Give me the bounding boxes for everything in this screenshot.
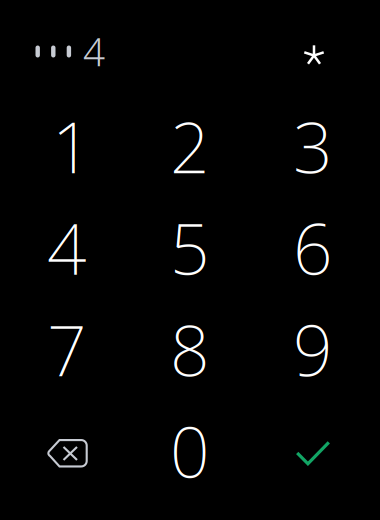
button[interactable]: 8 xyxy=(128,298,251,400)
button[interactable]: 4 xyxy=(5,197,128,298)
staticText: 3 xyxy=(293,100,333,192)
button[interactable]: 6 xyxy=(251,197,374,298)
staticText: 4 xyxy=(83,25,105,77)
staticText: 0 xyxy=(170,405,210,497)
staticText: 6 xyxy=(293,202,333,294)
staticText: 1 xyxy=(52,100,92,192)
button[interactable]: Confirm xyxy=(251,400,374,501)
button[interactable]: Secret entry xyxy=(294,35,334,75)
staticText: 2 xyxy=(170,100,210,192)
button[interactable]: 2 xyxy=(128,95,251,197)
button[interactable]: Delete xyxy=(5,400,128,501)
staticText: 7 xyxy=(47,303,87,395)
button[interactable]: 0 xyxy=(128,400,251,501)
staticText: 9 xyxy=(293,303,333,395)
button[interactable]: 7 xyxy=(5,298,128,400)
button[interactable]: 5 xyxy=(128,197,251,298)
button[interactable]: 9 xyxy=(251,298,374,400)
staticText: 4 xyxy=(47,202,87,294)
button[interactable]: 3 xyxy=(251,95,374,197)
staticText: 5 xyxy=(170,202,210,294)
button[interactable]: 1 xyxy=(5,95,128,197)
staticText: 8 xyxy=(170,303,210,395)
